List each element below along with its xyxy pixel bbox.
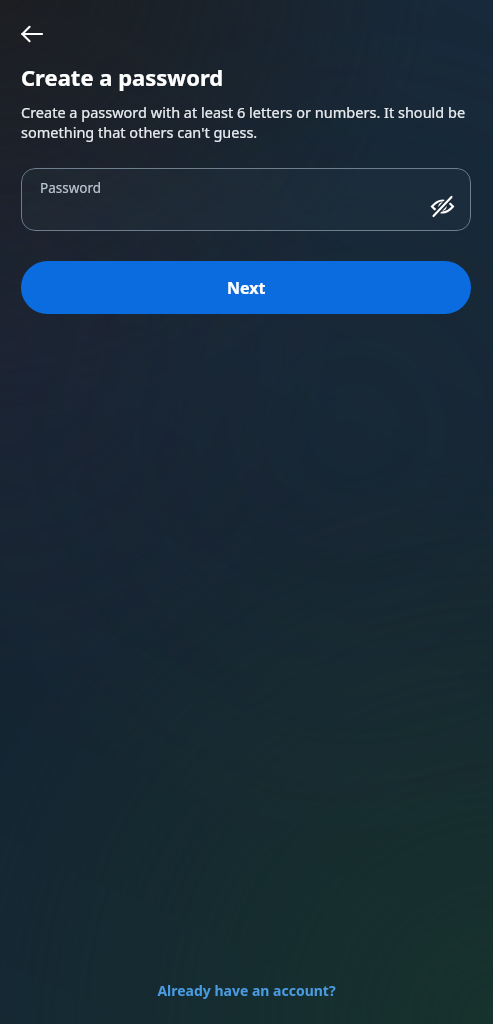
staticText: Create a password: [21, 62, 224, 92]
button[interactable]: Show password: [422, 186, 462, 226]
button[interactable]: Password: [21, 168, 471, 231]
button[interactable]: Next: [21, 261, 471, 314]
staticText: Next: [227, 277, 266, 299]
staticText: Password: [40, 179, 102, 197]
staticText: Already have an account?: [157, 981, 336, 1000]
staticText: Create a password with at least 6 letter…: [21, 102, 477, 143]
button[interactable]: Back: [8, 10, 56, 58]
button[interactable]: Already have an account?: [145, 975, 348, 1006]
